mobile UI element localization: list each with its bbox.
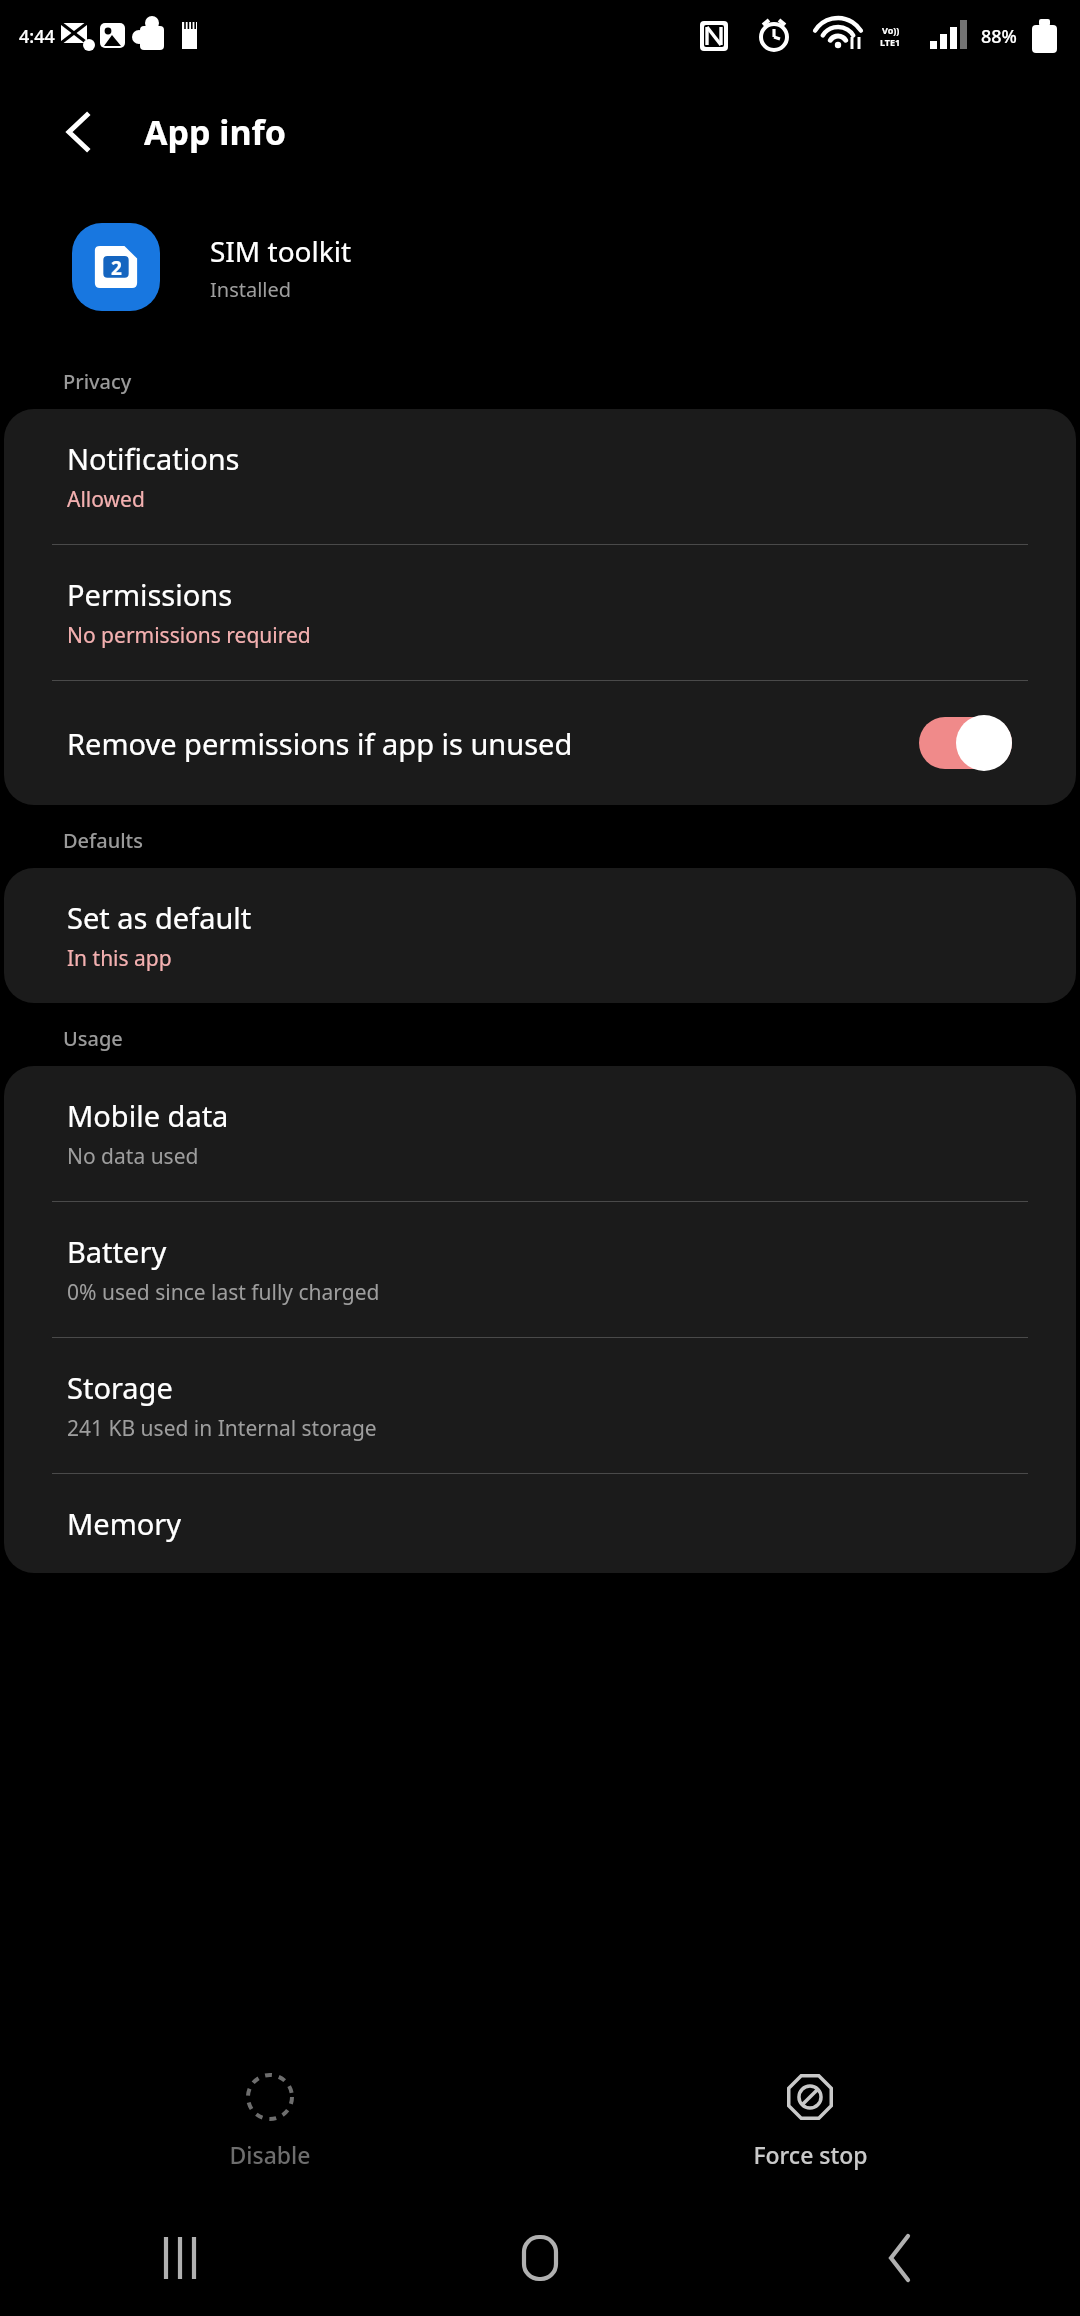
staticText: Defaults	[63, 827, 143, 854]
staticText: Force stop	[753, 2139, 868, 2170]
staticText: App info	[144, 109, 287, 155]
staticText: No data used	[67, 1142, 199, 1171]
button[interactable]: Mobile data	[4, 1066, 1076, 1201]
staticText: 0% used since last fully charged	[67, 1278, 380, 1307]
button[interactable]: Recent apps	[0, 2200, 360, 2316]
staticText: Vo))	[882, 24, 900, 36]
staticText: Memory	[67, 1504, 182, 1543]
button[interactable]: 2	[0, 192, 1080, 342]
staticText: 241 KB used in Internal storage	[67, 1414, 377, 1443]
staticText: 88%	[981, 24, 1017, 49]
staticText: 4:44	[19, 24, 55, 49]
button[interactable]: Memory	[4, 1474, 1076, 1573]
staticText: Set as default	[67, 898, 252, 937]
staticText: Usage	[63, 1025, 123, 1052]
staticText: Battery	[67, 1232, 167, 1271]
staticText: SIM toolkit	[210, 232, 352, 270]
staticText: LTE1	[880, 36, 901, 48]
button[interactable]: Disable	[0, 2040, 540, 2200]
staticText: Allowed	[67, 485, 145, 514]
staticText: Permissions	[67, 575, 233, 614]
staticText: Installed	[210, 276, 292, 303]
button[interactable]: Home	[360, 2200, 720, 2316]
button[interactable]: Back	[720, 2200, 1080, 2316]
button[interactable]: Battery	[4, 1202, 1076, 1337]
button[interactable]: Storage	[4, 1338, 1076, 1473]
button[interactable]: Notifications	[4, 409, 1076, 544]
staticText: No permissions required	[67, 621, 311, 650]
button[interactable]: Back	[46, 100, 110, 164]
staticText: 2	[111, 255, 122, 281]
staticText: Remove permissions if app is unused	[67, 724, 919, 763]
staticText: In this app	[67, 944, 172, 973]
staticText: Mobile data	[67, 1096, 229, 1135]
staticText: Storage	[67, 1368, 173, 1407]
button[interactable]: Permissions	[4, 545, 1076, 680]
button[interactable]: Remove permissions if app is unused	[4, 681, 1076, 805]
staticText: Notifications	[67, 439, 240, 478]
button[interactable]: Set as default	[4, 868, 1076, 1003]
button[interactable]: Force stop	[540, 2040, 1080, 2200]
staticText: Privacy	[63, 368, 132, 395]
staticText: Disable	[229, 2139, 311, 2170]
